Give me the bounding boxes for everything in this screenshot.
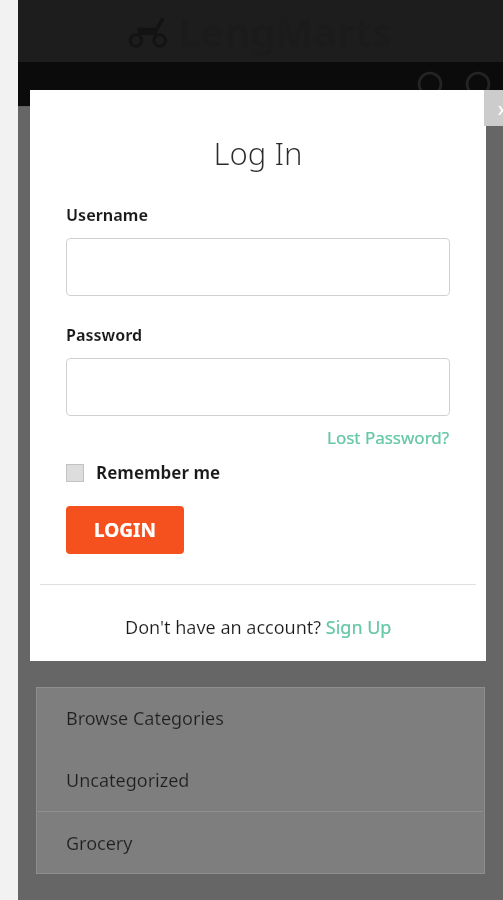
button[interactable]: LOGIN: [66, 506, 184, 554]
staticText: Remember me: [96, 461, 221, 484]
button[interactable]: [66, 358, 450, 416]
staticText: x: [498, 97, 503, 120]
button[interactable]: Uncategorized: [36, 749, 485, 811]
button[interactable]: Remember me: [66, 461, 221, 484]
staticText: Uncategorized: [66, 768, 190, 793]
staticText: Log In: [30, 132, 486, 174]
staticText: Lost Password?: [327, 426, 450, 449]
staticText: Grocery: [66, 831, 133, 856]
staticText: LOGIN: [94, 517, 156, 543]
staticText: Don't have an account? Sign Up: [125, 615, 392, 640]
button[interactable]: Grocery: [36, 811, 485, 874]
button[interactable]: Cart: [463, 69, 493, 99]
button[interactable]: Browse Categories: [36, 687, 485, 749]
staticText: Browse Categories: [66, 706, 224, 731]
button[interactable]: Search: [415, 69, 445, 99]
button[interactable]: Close: [484, 90, 503, 126]
staticText: Password: [66, 324, 143, 346]
button[interactable]: [66, 238, 450, 296]
staticText: Username: [66, 204, 148, 226]
button[interactable]: Lost Password?: [327, 426, 450, 449]
button[interactable]: Don't have an account? Sign Up: [125, 615, 392, 640]
